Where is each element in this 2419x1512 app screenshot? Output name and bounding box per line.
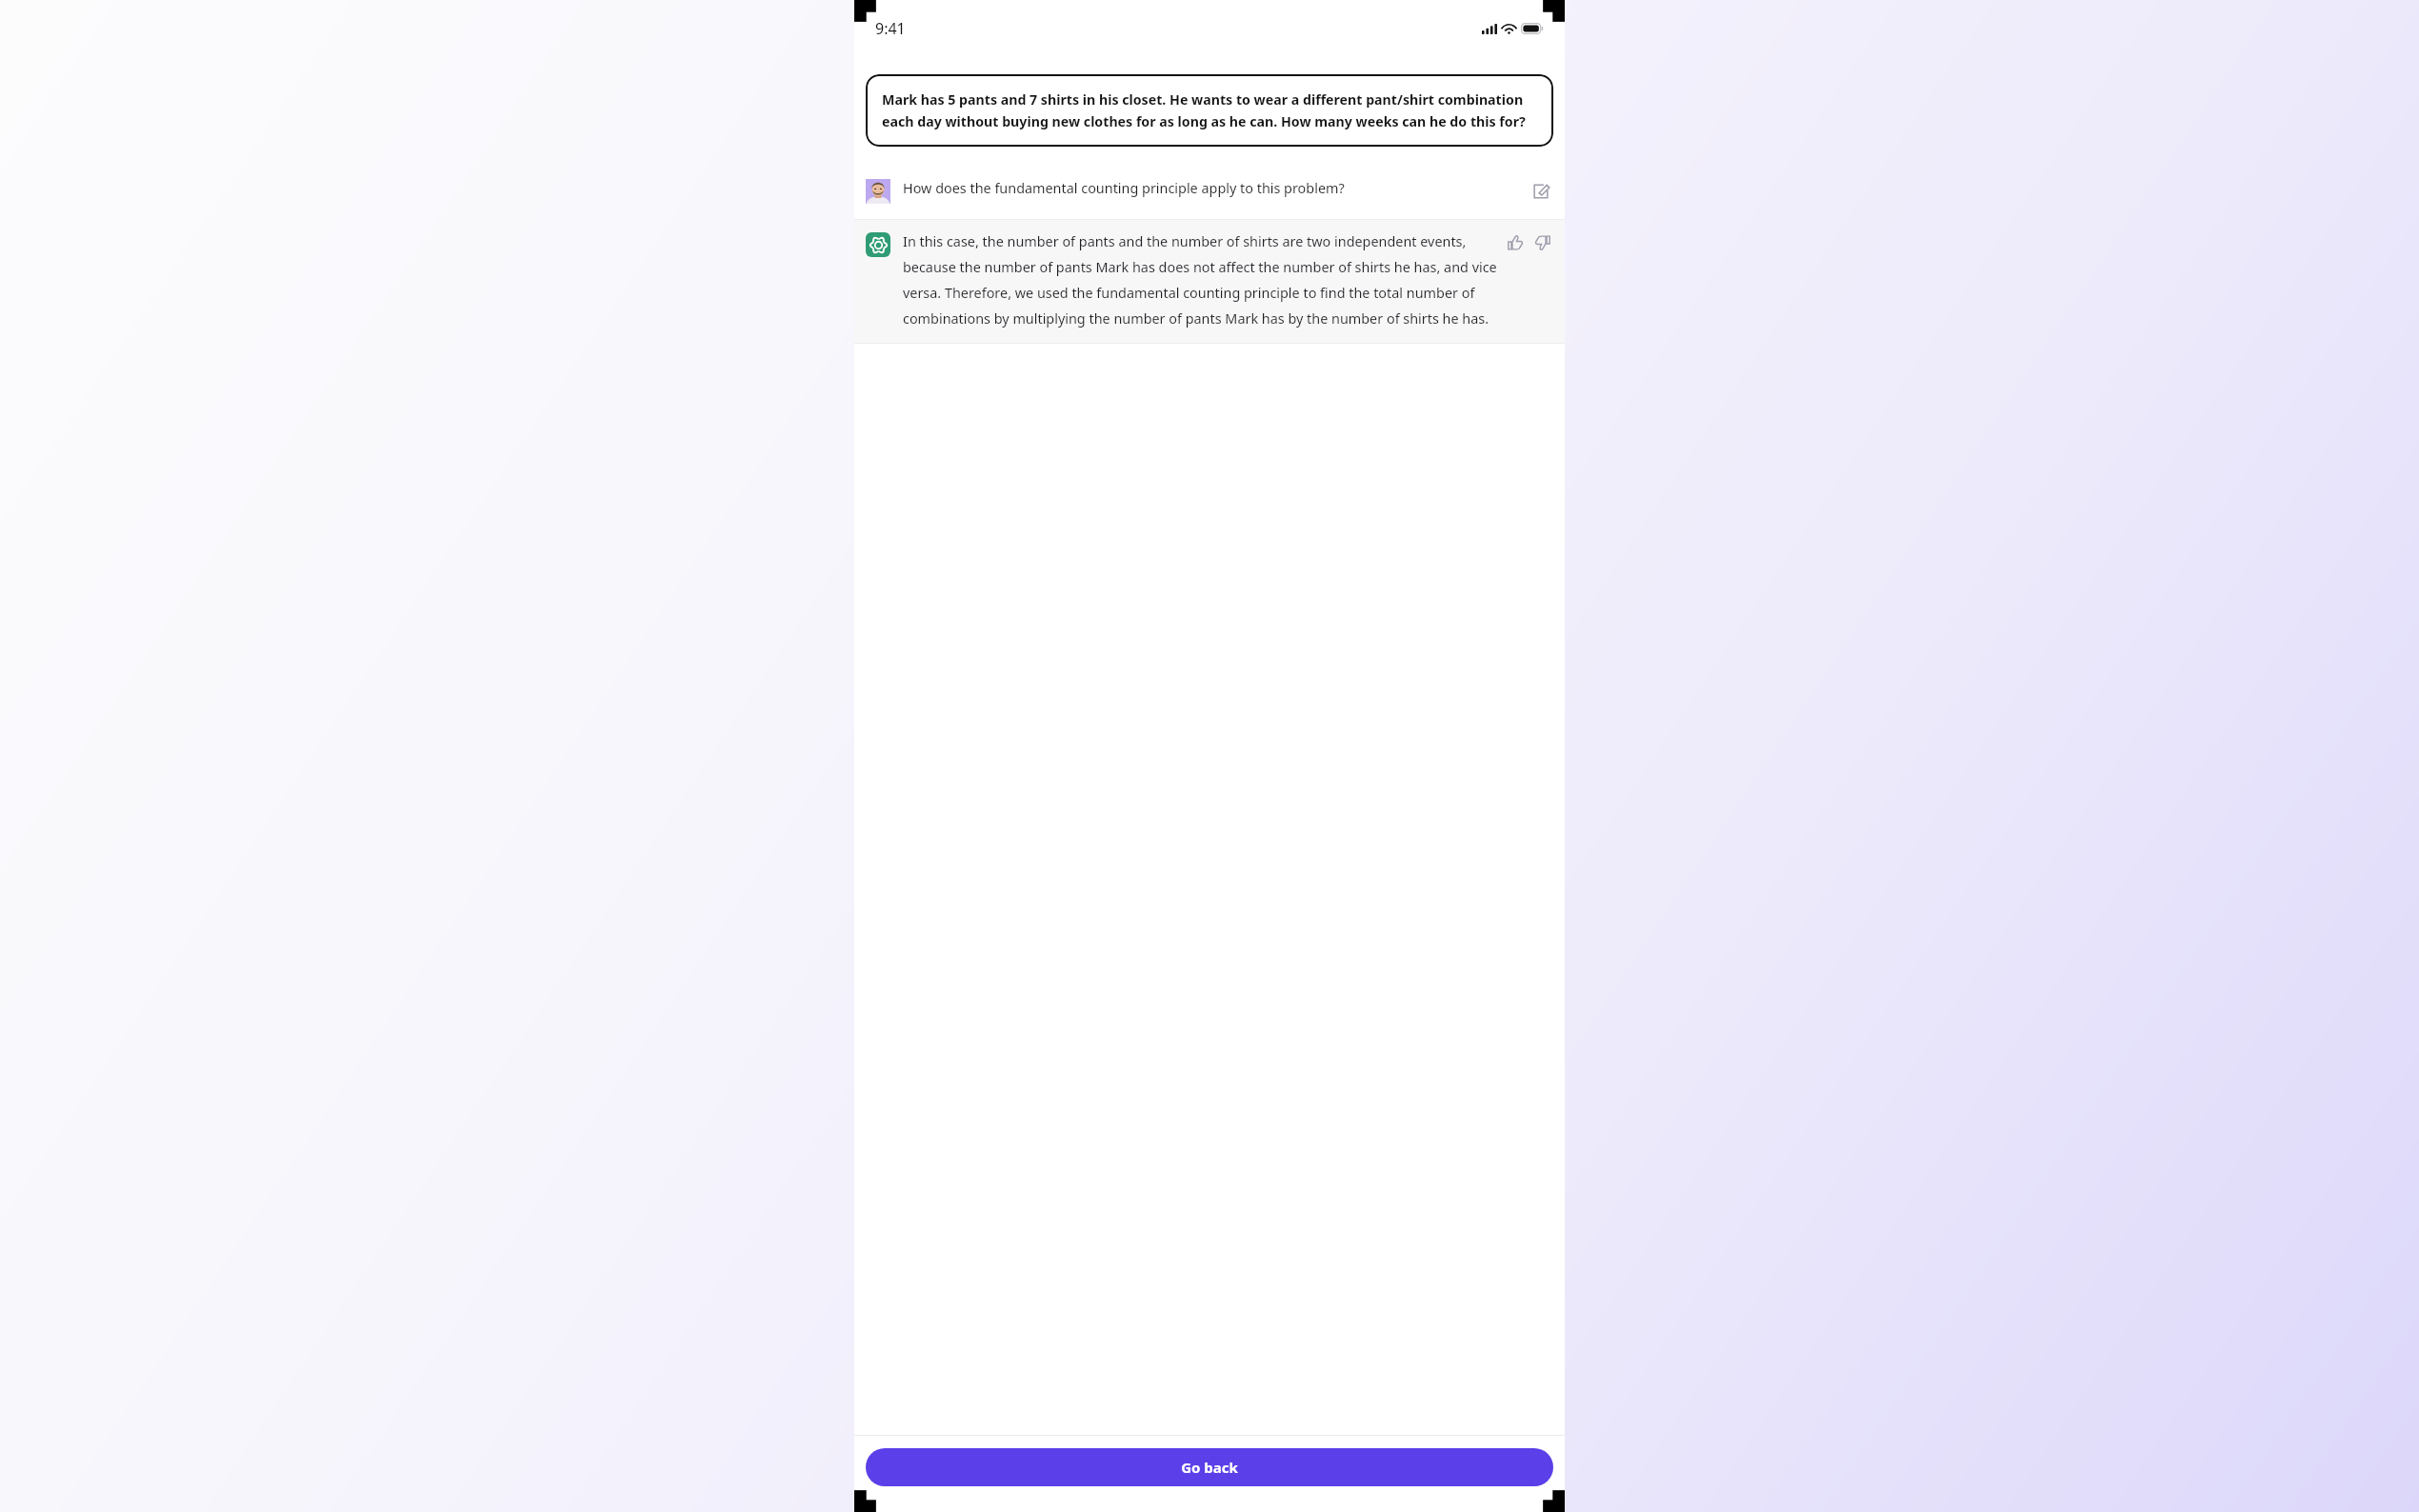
button[interactable]: Good response	[1505, 232, 1526, 253]
button[interactable]: Bad response	[1532, 232, 1553, 253]
staticText: 9:41	[875, 18, 906, 39]
button[interactable]: Edit message	[1529, 179, 1553, 204]
staticText: Go back	[1181, 1458, 1238, 1477]
button[interactable]: Go back	[866, 1448, 1553, 1486]
button[interactable]: How does the fundamental counting princi…	[854, 179, 1565, 204]
staticText: In this case, the number of pants and th…	[903, 232, 1497, 328]
staticText: How does the fundamental counting princi…	[903, 179, 1519, 198]
button[interactable]: Mark has 5 pants and 7 shirts in his clo…	[866, 74, 1553, 147]
staticText: Mark has 5 pants and 7 shirts in his clo…	[882, 90, 1537, 130]
